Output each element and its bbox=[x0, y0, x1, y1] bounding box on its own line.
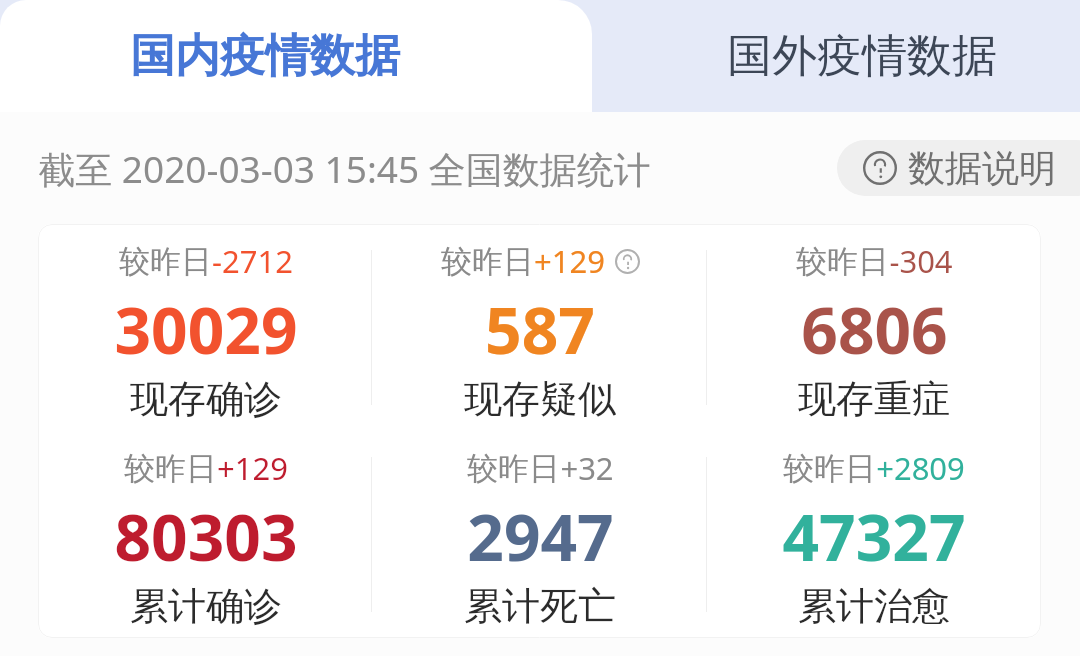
staticText: -304 bbox=[889, 240, 953, 282]
staticText: 现存重症 bbox=[798, 375, 950, 419]
staticText: +32 bbox=[560, 447, 614, 489]
staticText: +2809 bbox=[876, 447, 965, 489]
button[interactable]: 较昨日 bbox=[373, 224, 707, 431]
staticText: 较昨日 bbox=[119, 242, 212, 281]
staticText: 累计确诊 bbox=[130, 582, 282, 626]
staticText: 累计治愈 bbox=[798, 582, 950, 626]
button[interactable]: 国外疫情数据 bbox=[592, 0, 1080, 112]
button[interactable]: 较昨日 bbox=[38, 431, 373, 638]
button[interactable]: 较昨日 bbox=[707, 431, 1041, 638]
staticText: 6806 bbox=[801, 286, 948, 373]
staticText: +129 bbox=[534, 240, 605, 282]
staticText: +129 bbox=[217, 447, 288, 489]
staticText: 80303 bbox=[114, 493, 298, 580]
staticText: 较昨日 bbox=[124, 449, 217, 488]
staticText: 较昨日 bbox=[796, 242, 889, 281]
button[interactable]: 较昨日 bbox=[373, 431, 707, 638]
button[interactable]: 较昨日 bbox=[707, 224, 1041, 431]
staticText: 2947 bbox=[467, 493, 614, 580]
other: Data explanation bbox=[863, 151, 897, 185]
staticText: 现存确诊 bbox=[130, 375, 282, 419]
staticText: 国外疫情数据 bbox=[727, 28, 997, 85]
staticText: 587 bbox=[485, 286, 595, 373]
other: More info bbox=[615, 249, 640, 274]
button[interactable]: Data explanation bbox=[837, 140, 1080, 196]
staticText: 累计死亡 bbox=[464, 582, 616, 626]
staticText: 国内疫情数据 bbox=[130, 28, 400, 85]
staticText: 现存疑似 bbox=[464, 375, 616, 419]
button[interactable]: 国内疫情数据 bbox=[0, 0, 592, 112]
staticText: 较昨日 bbox=[783, 449, 876, 488]
staticText: 较昨日 bbox=[441, 242, 534, 281]
staticText: 较昨日 bbox=[467, 449, 560, 488]
staticText: 30029 bbox=[114, 286, 298, 373]
staticText: -2712 bbox=[212, 240, 293, 282]
staticText: 截至 2020-03-03 15:45 全国数据统计 bbox=[38, 143, 651, 194]
button[interactable]: 较昨日 bbox=[38, 224, 373, 431]
staticText: 数据说明 bbox=[908, 145, 1056, 192]
staticText: 47327 bbox=[782, 493, 966, 580]
